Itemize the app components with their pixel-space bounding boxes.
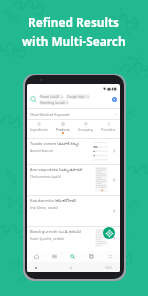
button[interactable]: Home: [27, 251, 45, 262]
button[interactable]: Grouping: [74, 119, 97, 137]
button[interactable]: Cough (దగ్గు): [67, 94, 89, 99]
staticText: Chekurmanis (అడవి): [30, 174, 61, 179]
button[interactable]: Bandi gurinchi (బండి గురించి): [27, 226, 120, 250]
button[interactable]: Providers: [97, 119, 120, 137]
button[interactable]: Products: [51, 119, 74, 137]
button[interactable]: Amrutapodaka (అమృతపాదక): [27, 164, 120, 195]
staticText: Cough (దగ్గు): [67, 94, 86, 99]
staticText: Katukarosha (కటుకరోహిణి): [30, 198, 77, 204]
button[interactable]: Ingredients: [27, 119, 51, 137]
button[interactable]: Home: [105, 266, 112, 269]
button[interactable]: Pavan (పవన్): [40, 94, 63, 99]
button[interactable]: More: [101, 251, 120, 262]
staticText: Vomiting (వాంతి): [40, 100, 65, 105]
button[interactable]: Clear search: [112, 97, 117, 102]
staticText: Bandi gurinchi (బండి గురించి): [30, 229, 82, 235]
staticText: with Multi-Search: [22, 33, 126, 49]
staticText: chai (jhina, sarala): [30, 205, 58, 209]
staticText: Ingredients: [30, 127, 48, 131]
staticText: Avanm (konso): [30, 148, 53, 152]
button[interactable]: Vomiting (వాంతి): [40, 100, 68, 105]
staticText: Providers: [101, 127, 116, 131]
button[interactable]: Back: [69, 266, 73, 270]
button[interactable]: Katukarosha (కటుకరోహిణి): [27, 195, 120, 226]
button[interactable]: Add remedy: [103, 227, 115, 239]
button[interactable]: Search: [30, 96, 37, 103]
staticText: Tupaki vonam (తుపాకి రెమ్మ): [30, 141, 80, 147]
staticText: Grouping: [78, 127, 93, 131]
staticText: Amrutapodaka (అమృతపాదక): [30, 167, 83, 173]
button[interactable]: Tupaki vonam (తుపాకి రెమ్మ): [27, 138, 120, 164]
staticText: Show Matched Keywords: [30, 112, 70, 117]
staticText: Suleri (gurcha, vedala): [30, 236, 65, 240]
button[interactable]: Show Matched Keywords: [30, 109, 117, 119]
button[interactable]: Lists: [45, 251, 63, 262]
staticText: Products: [56, 127, 70, 131]
button[interactable]: Search: [63, 251, 82, 262]
staticText: Pavan (పవన్): [40, 94, 60, 99]
button[interactable]: Saved: [82, 251, 101, 262]
staticText: Refined Results: [28, 14, 120, 30]
